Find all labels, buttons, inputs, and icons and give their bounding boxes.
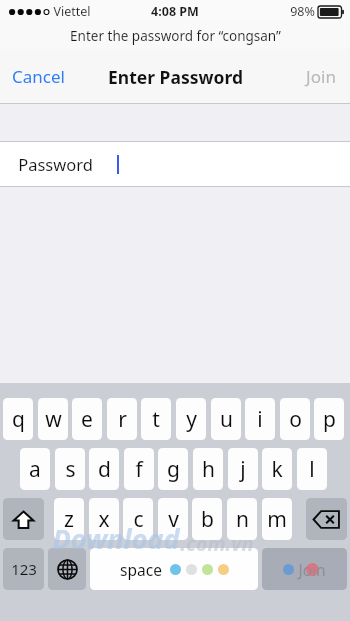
staticText: l (309, 455, 315, 484)
button[interactable]: m (262, 498, 292, 540)
staticText: d (98, 455, 111, 484)
staticText: Password (18, 153, 93, 175)
staticText: 4:08 PM (151, 3, 199, 20)
staticText: p (323, 405, 336, 434)
staticText: Download (52, 520, 180, 557)
button[interactable]: k (262, 448, 292, 490)
staticText: t (152, 405, 160, 434)
staticText: q (12, 405, 25, 434)
button[interactable]: Shift (3, 498, 44, 540)
button[interactable]: v (158, 498, 188, 540)
staticText: Enter Password (108, 65, 243, 89)
button[interactable]: z (54, 498, 84, 540)
button[interactable]: o (280, 398, 310, 440)
button[interactable]: 123 (3, 548, 44, 590)
button[interactable]: w (38, 398, 68, 440)
staticText: k (271, 455, 283, 484)
button[interactable]: h (193, 448, 223, 490)
staticText: b (201, 505, 214, 534)
staticText: n (236, 505, 249, 534)
button[interactable]: l (297, 448, 327, 490)
staticText: r (118, 405, 127, 434)
staticText: Cancel (12, 65, 65, 88)
staticText: m (267, 505, 287, 534)
staticText: Join (298, 559, 326, 580)
staticText: Enter the password for “congsan” (70, 27, 281, 45)
staticText: i (257, 405, 263, 434)
button[interactable]: r (107, 398, 137, 440)
button[interactable]: Change keyboard (48, 548, 86, 590)
staticText: g (167, 455, 180, 484)
staticText: a (29, 455, 41, 484)
staticText: f (135, 455, 143, 484)
button[interactable]: x (89, 498, 119, 540)
staticText: u (220, 405, 233, 434)
staticText: j (240, 455, 246, 484)
staticText: 98% (290, 3, 315, 20)
button[interactable]: Cancel (0, 55, 77, 98)
button[interactable]: Join (292, 55, 350, 98)
button[interactable]: c (123, 498, 153, 540)
staticText: .com.vn (180, 530, 254, 557)
staticText: y (186, 405, 197, 434)
button[interactable]: i (245, 398, 275, 440)
button[interactable]: e (72, 398, 102, 440)
staticText: v (168, 505, 179, 534)
staticText: Viettel (53, 3, 91, 20)
button[interactable]: s (55, 448, 85, 490)
button[interactable]: u (211, 398, 241, 440)
staticText: c (133, 505, 144, 534)
button[interactable]: n (227, 498, 257, 540)
staticText: x (98, 505, 110, 534)
button[interactable]: b (192, 498, 222, 540)
staticText: z (64, 505, 74, 534)
button[interactable]: p (314, 398, 344, 440)
button[interactable]: a (20, 448, 50, 490)
button[interactable]: q (3, 398, 33, 440)
staticText: Join (306, 65, 336, 88)
button[interactable]: Join (262, 548, 347, 590)
button[interactable]: space (90, 548, 258, 590)
button[interactable]: g (158, 448, 188, 490)
button[interactable]: f (124, 448, 154, 490)
staticText: o (289, 405, 302, 434)
staticText: w (45, 405, 62, 434)
button[interactable]: y (176, 398, 206, 440)
button[interactable]: Delete (306, 498, 347, 540)
staticText: 123 (11, 559, 37, 579)
button[interactable]: d (89, 448, 119, 490)
button[interactable]: j (228, 448, 258, 490)
staticText: e (81, 405, 93, 434)
staticText: s (65, 455, 76, 484)
button[interactable]: t (141, 398, 171, 440)
staticText: h (202, 455, 215, 484)
button[interactable]: Password (0, 142, 350, 186)
staticText: space (120, 559, 162, 580)
